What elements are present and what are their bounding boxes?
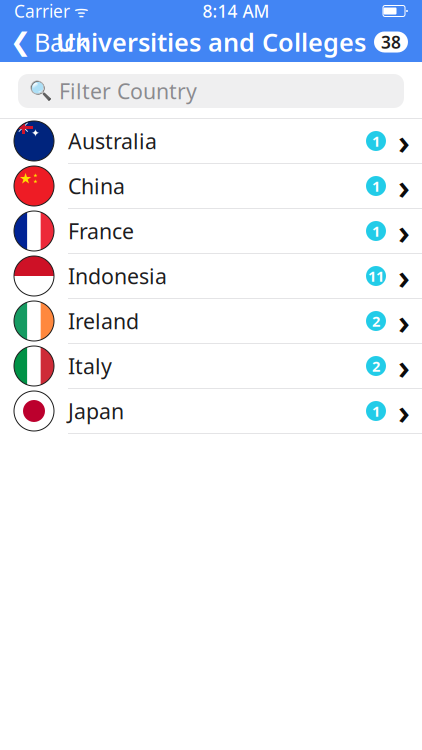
staticText: ★ xyxy=(33,172,38,178)
staticText: 8:14 AM xyxy=(202,0,269,22)
staticText: Carrier xyxy=(14,0,70,22)
staticText: Universities and Colleges xyxy=(56,25,366,59)
staticText: China xyxy=(68,172,125,200)
button[interactable]: ★ xyxy=(0,164,422,209)
staticText: Japan xyxy=(68,397,124,425)
staticText: 38 xyxy=(381,30,401,53)
staticText: 1 xyxy=(372,131,380,151)
button[interactable]: Italy xyxy=(0,344,422,389)
staticText: ᯤ xyxy=(70,0,89,22)
staticText: 11 xyxy=(368,266,384,286)
staticText: 2 xyxy=(372,356,380,376)
staticText: ✦ xyxy=(31,127,40,139)
button[interactable]: ❮ xyxy=(0,22,100,62)
staticText: Australia xyxy=(68,127,157,155)
staticText: ✳ xyxy=(16,118,31,137)
staticText: › xyxy=(398,118,410,164)
button[interactable]: France xyxy=(0,209,422,254)
staticText: Indonesia xyxy=(68,262,167,290)
button[interactable]: Japan xyxy=(0,389,422,434)
staticText: France xyxy=(68,217,134,245)
staticText: ★ xyxy=(33,178,38,184)
staticText: › xyxy=(398,433,410,479)
staticText: › xyxy=(398,208,410,254)
staticText: Italy xyxy=(68,352,112,380)
button[interactable]: Ireland xyxy=(0,299,422,344)
button[interactable]: 38 items xyxy=(374,31,422,52)
staticText: Back xyxy=(34,25,90,59)
staticText: › xyxy=(398,253,410,299)
staticText: › xyxy=(398,343,410,389)
button[interactable]: Indonesia xyxy=(0,254,422,299)
staticText: › xyxy=(398,163,410,209)
staticText: 1 xyxy=(372,221,380,241)
staticText: › xyxy=(398,388,410,434)
staticText: 2 xyxy=(372,311,380,331)
staticText: ★ xyxy=(19,170,32,187)
button[interactable]: ✳ xyxy=(0,119,422,164)
staticText: 1 xyxy=(372,401,380,421)
staticText: › xyxy=(398,298,410,344)
staticText: Filter Country xyxy=(59,77,197,105)
staticText: ❮ xyxy=(10,28,31,56)
staticText: 🔍 xyxy=(29,80,52,102)
staticText: Ireland xyxy=(68,307,139,335)
staticText: 1 xyxy=(372,176,380,196)
button[interactable]: 🔍 xyxy=(0,62,422,118)
